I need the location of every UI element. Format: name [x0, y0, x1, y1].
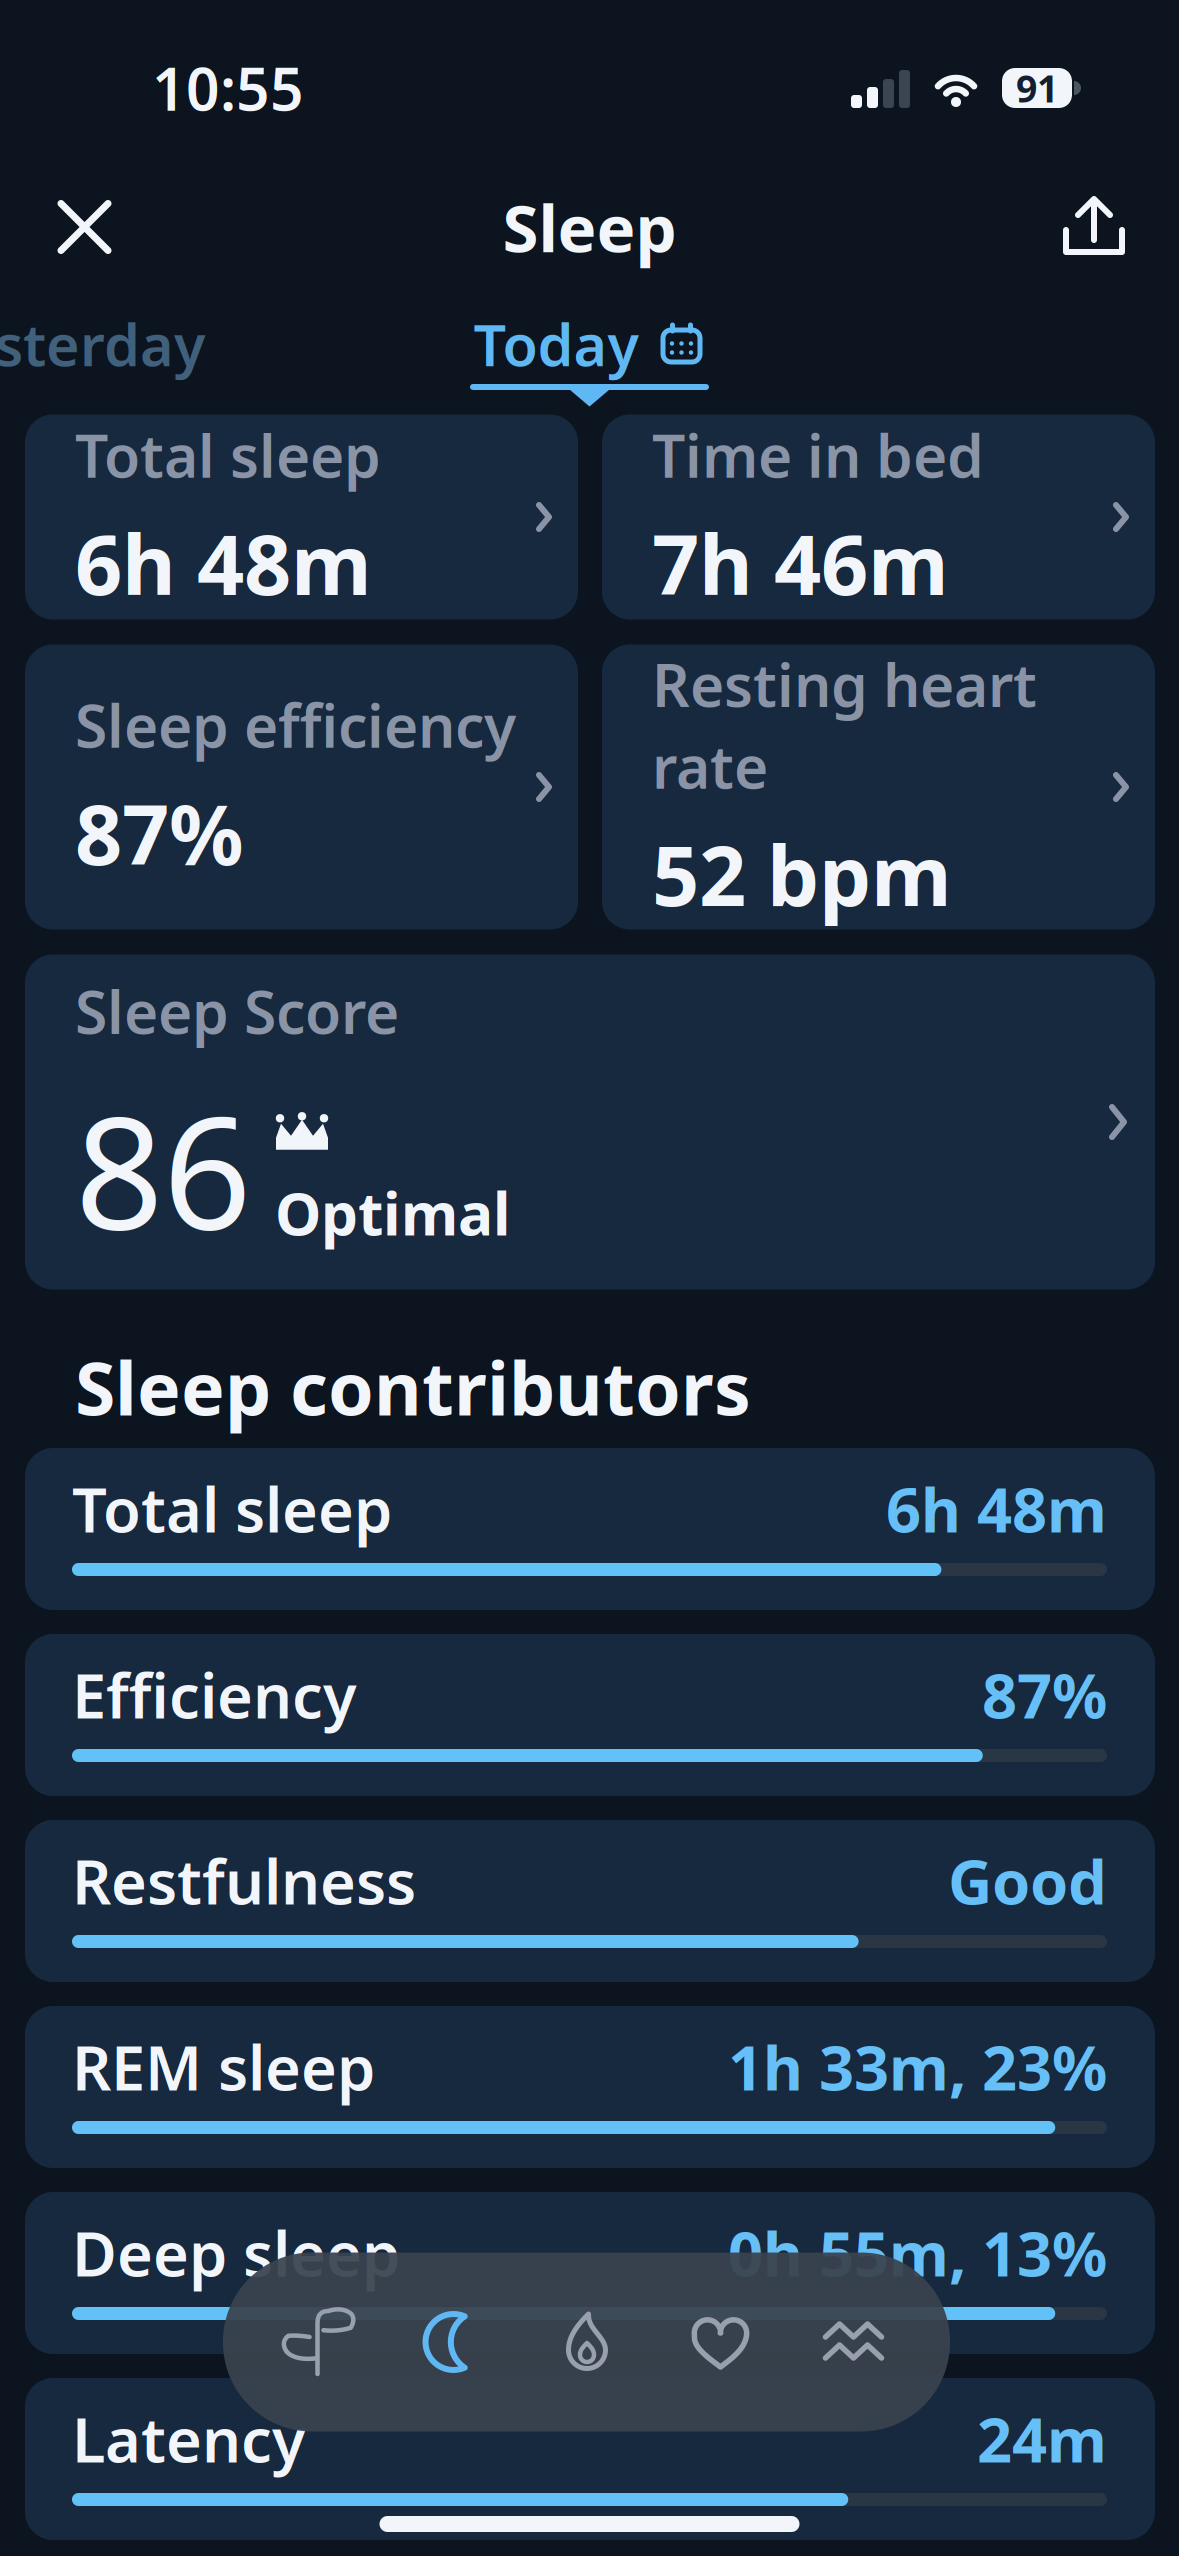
staticText: 6h 48m — [886, 1468, 1107, 1549]
button[interactable]: Close — [57, 199, 112, 254]
staticText: 7h 46m — [652, 508, 949, 618]
staticText: rate — [652, 727, 768, 805]
staticText: Deep sleep — [72, 2212, 400, 2293]
button[interactable]: Share — [1063, 196, 1125, 258]
staticText: Sleep — [502, 184, 676, 270]
button[interactable]: Heart — [685, 2307, 755, 2377]
staticText: Sleep contributors — [75, 1338, 751, 1436]
button[interactable]: Total sleep — [25, 414, 578, 619]
staticText: Resting heart — [652, 645, 1037, 723]
staticText: Good — [948, 1840, 1107, 1921]
staticText: 52 bpm — [652, 819, 952, 929]
button[interactable]: Deep sleep — [25, 2192, 1155, 2354]
button[interactable]: Readiness — [283, 2307, 353, 2377]
staticText: Total sleep — [75, 416, 381, 494]
staticText: REM sleep — [72, 2026, 375, 2107]
staticText: Total sleep — [72, 1468, 392, 1549]
staticText: Sleep Score — [75, 972, 399, 1050]
staticText: 24m — [977, 2398, 1107, 2479]
staticText: Time in bed — [652, 416, 984, 494]
button[interactable]: Restfulness — [25, 1820, 1155, 1982]
button[interactable]: Sleep Score — [25, 954, 1155, 1289]
button[interactable]: Sleep efficiency — [25, 644, 578, 929]
button[interactable]: REM sleep — [25, 2006, 1155, 2168]
staticText: 1h 33m, 23% — [728, 2026, 1107, 2107]
staticText: Optimal — [275, 1174, 510, 1252]
staticText: 6h 48m — [75, 508, 372, 618]
staticText: Restfulness — [72, 1840, 416, 1921]
staticText: 0h 55m, 13% — [728, 2212, 1107, 2293]
staticText: Sleep efficiency — [75, 686, 516, 764]
button[interactable]: Latency — [25, 2378, 1155, 2540]
button[interactable]: Activity — [551, 2307, 621, 2377]
staticText: 91 — [1016, 63, 1058, 113]
staticText: Latency — [72, 2398, 306, 2479]
staticText: Efficiency — [72, 1654, 357, 1735]
staticText: 10:55 — [152, 49, 304, 127]
button[interactable]: Yesterday — [0, 306, 205, 382]
button[interactable]: Efficiency — [25, 1634, 1155, 1796]
button[interactable]: Resting heart — [602, 644, 1155, 929]
button[interactable]: Sleep — [417, 2307, 487, 2377]
button[interactable]: Today — [473, 306, 702, 382]
staticText: Yesterday — [0, 306, 205, 382]
staticText: 87% — [982, 1654, 1107, 1735]
staticText: 86 — [75, 1066, 251, 1272]
button[interactable]: Total sleep — [25, 1448, 1155, 1610]
staticText: Today — [473, 306, 638, 382]
button[interactable]: Stress — [819, 2307, 889, 2377]
button[interactable]: Time in bed — [602, 414, 1155, 619]
staticText: 87% — [75, 778, 244, 888]
